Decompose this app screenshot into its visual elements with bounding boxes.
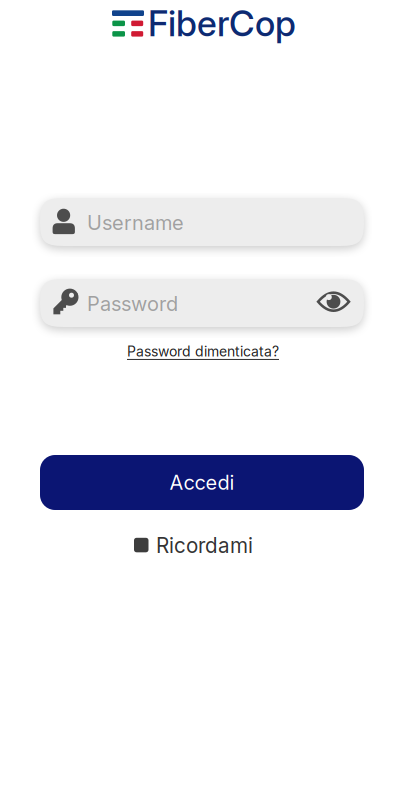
staticText: Accedi xyxy=(169,470,234,495)
button[interactable]: Ricordami xyxy=(134,533,252,557)
staticText: Password dimenticata? xyxy=(127,343,279,360)
button[interactable]: Password xyxy=(40,279,364,327)
button[interactable]: Show password xyxy=(309,278,357,326)
button[interactable]: Username xyxy=(40,198,364,246)
staticText: FiberCop xyxy=(148,2,296,45)
staticText: Username xyxy=(87,210,184,235)
staticText: Password xyxy=(87,291,178,316)
button[interactable]: Accedi xyxy=(40,455,364,510)
staticText: Ricordami xyxy=(156,533,253,558)
button[interactable]: Password dimenticata? xyxy=(127,343,279,360)
